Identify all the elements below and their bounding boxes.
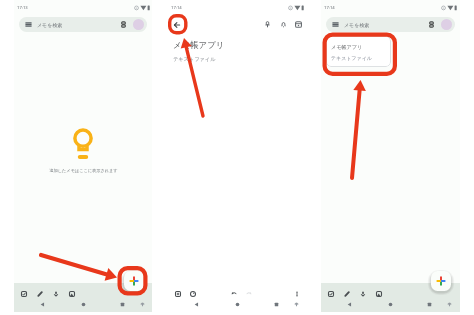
button[interactable]: Back xyxy=(170,18,183,31)
staticText: メモ帳アプリ xyxy=(173,40,225,51)
button[interactable]: New drawing xyxy=(341,288,352,299)
staticText: メモを検索 xyxy=(344,22,370,28)
button[interactable]: Pin note xyxy=(262,19,273,30)
staticText: メモを検索 xyxy=(37,22,63,28)
staticText: 17:14 xyxy=(171,5,182,11)
button[interactable]: Create new note xyxy=(431,271,451,291)
button[interactable]: メモを検索 xyxy=(326,17,455,32)
button[interactable]: Redo xyxy=(243,288,254,299)
staticText: テキストファイル xyxy=(173,56,216,63)
button[interactable]: Reminder xyxy=(278,19,289,30)
button[interactable]: Create new note xyxy=(124,271,144,291)
button[interactable]: New list xyxy=(18,288,29,299)
button[interactable]: Undo xyxy=(228,288,239,299)
button[interactable]: Add xyxy=(172,288,183,299)
button[interactable]: メモを検索 xyxy=(19,17,147,32)
button[interactable]: New drawing xyxy=(34,288,45,299)
staticText: 17:13 xyxy=(17,5,28,11)
button[interactable]: More options xyxy=(291,288,302,299)
button[interactable]: Change colour xyxy=(187,288,198,299)
staticText: 追加したメモはここに表示されます xyxy=(49,168,118,173)
button[interactable]: New image note xyxy=(66,288,77,299)
button[interactable]: New list xyxy=(325,288,336,299)
button[interactable]: メモ帳アプリ xyxy=(326,36,391,67)
button[interactable]: New voice note xyxy=(50,288,61,299)
staticText: 17:14 xyxy=(324,5,335,11)
button[interactable]: New image note xyxy=(373,288,384,299)
button[interactable]: Archive xyxy=(293,19,304,30)
button[interactable]: New voice note xyxy=(357,288,368,299)
staticText: メモ帳アプリ xyxy=(331,44,363,50)
staticText: テキストファイル xyxy=(331,55,372,61)
